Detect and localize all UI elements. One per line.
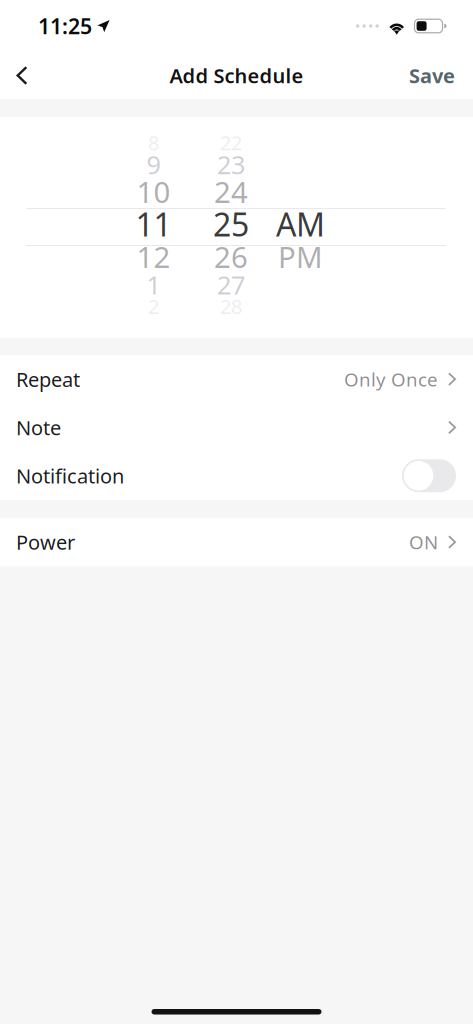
button[interactable]: Repeat [0, 355, 473, 403]
button[interactable]: Back [0, 53, 44, 97]
staticText: 2 [148, 293, 159, 320]
staticText: PM [278, 237, 323, 276]
button[interactable]: Save [409, 53, 455, 97]
staticText: Only Once [344, 367, 438, 392]
staticText: 12 [136, 237, 170, 276]
staticText: 22 [220, 129, 242, 156]
staticText: AM [276, 203, 325, 245]
staticText: 8 [148, 129, 159, 156]
staticText: 11 [135, 203, 171, 245]
staticText: 26 [214, 237, 248, 276]
staticText: 23 [217, 148, 245, 181]
staticText: 10 [136, 172, 170, 211]
button[interactable]: Note [0, 403, 473, 452]
button[interactable]: Power [0, 518, 473, 566]
staticText: 9 [146, 148, 160, 181]
staticText: 11:25 [38, 12, 92, 40]
staticText: Save [409, 62, 455, 89]
staticText: Add Schedule [169, 62, 303, 89]
staticText: 1 [146, 268, 160, 301]
staticText: Note [16, 414, 61, 441]
staticText: Notification [16, 462, 124, 489]
staticText: Repeat [16, 366, 80, 392]
staticText: 24 [214, 172, 248, 211]
staticText: 28 [220, 293, 242, 320]
staticText: ON [409, 530, 438, 554]
staticText: Power [16, 529, 75, 555]
button[interactable]: Notification [0, 452, 473, 500]
staticText: 25 [213, 203, 249, 245]
staticText: 27 [217, 268, 245, 301]
